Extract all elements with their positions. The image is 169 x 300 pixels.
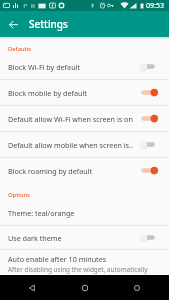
staticText: Defaults: [8, 45, 32, 53]
staticText: Options: [8, 191, 30, 199]
staticText: 09:53: [146, 1, 164, 11]
staticText: After disabling using the widget, automa…: [8, 265, 148, 274]
staticText: Block roaming by default: [8, 166, 140, 176]
button[interactable]: Auto enable after 10 minutes: [0, 250, 169, 275]
button[interactable]: Block roaming by default: [0, 158, 169, 184]
button[interactable]: Back: [12, 275, 52, 300]
button[interactable]: Theme: teal/orange: [0, 200, 169, 226]
button[interactable]: Navigate up: [0, 11, 27, 37]
button[interactable]: Recent apps: [117, 275, 157, 300]
button[interactable]: Home: [65, 275, 105, 300]
staticText: Auto enable after 10 minutes: [8, 254, 107, 264]
button[interactable]: Use dark theme: [0, 226, 169, 250]
staticText: Block mobile by default: [8, 88, 140, 98]
staticText: Block Wi-Fi by default: [8, 62, 140, 72]
staticText: Default allow Wi-Fi when screen is on: [8, 114, 140, 124]
staticText: Settings: [29, 17, 68, 31]
button[interactable]: Block Wi-Fi by default: [0, 54, 169, 80]
button[interactable]: Default allow Wi-Fi when screen is on: [0, 106, 169, 132]
staticText: Default allow mobile when screen is..: [8, 140, 140, 150]
staticText: Theme: teal/orange: [8, 208, 158, 218]
staticText: Use dark theme: [8, 233, 140, 243]
button[interactable]: Default allow mobile when screen is..: [0, 132, 169, 158]
button[interactable]: Block mobile by default: [0, 80, 169, 106]
